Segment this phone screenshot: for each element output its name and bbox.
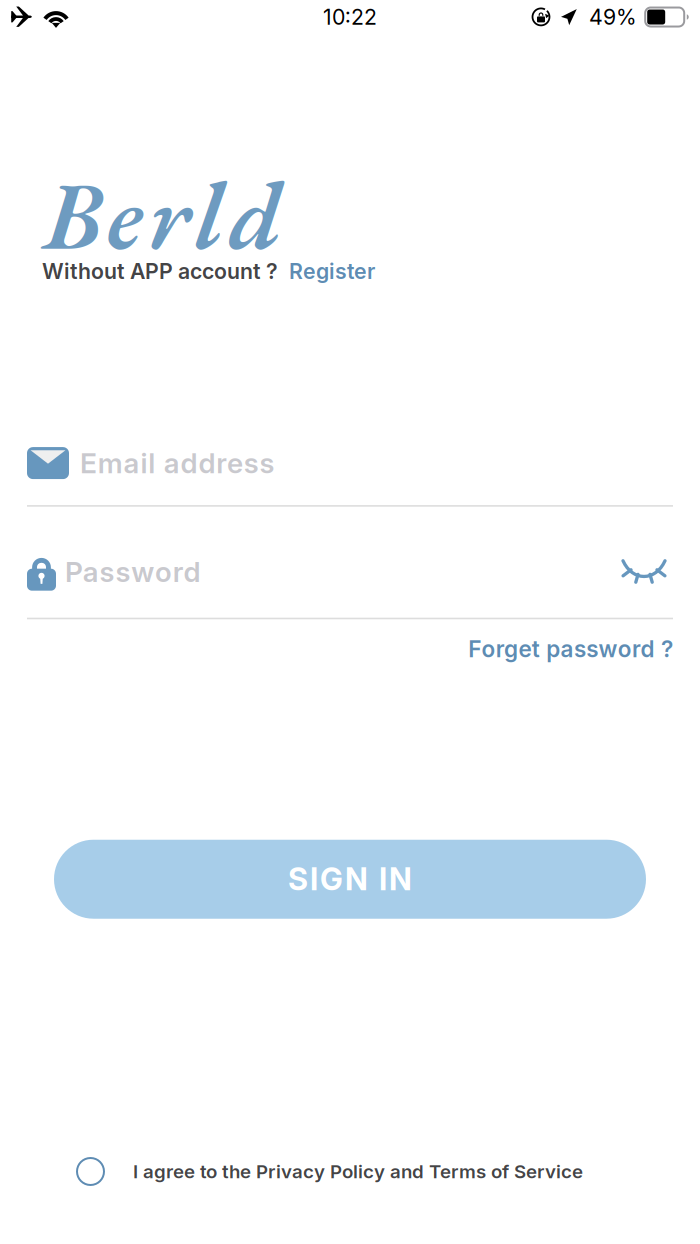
staticText: 49%	[589, 4, 637, 30]
staticText: Forget password ?	[468, 635, 673, 663]
button[interactable]: Show password	[615, 552, 673, 592]
staticText: Email address	[80, 446, 275, 480]
staticText: 10:22	[323, 4, 377, 30]
button[interactable]: SIGN IN	[54, 840, 646, 919]
staticText: Password	[65, 555, 201, 589]
staticText: Berld	[44, 152, 282, 277]
staticText: Without APP account ?	[42, 258, 278, 284]
staticText: Register	[289, 258, 375, 284]
staticText: I agree to the Privacy Policy and Terms …	[133, 1160, 583, 1183]
button[interactable]: Register	[289, 258, 375, 284]
staticText: SIGN IN	[288, 861, 412, 898]
button[interactable]: Forget password ?	[468, 635, 673, 663]
button[interactable]: I agree to the Privacy Policy and Terms …	[76, 1157, 583, 1186]
